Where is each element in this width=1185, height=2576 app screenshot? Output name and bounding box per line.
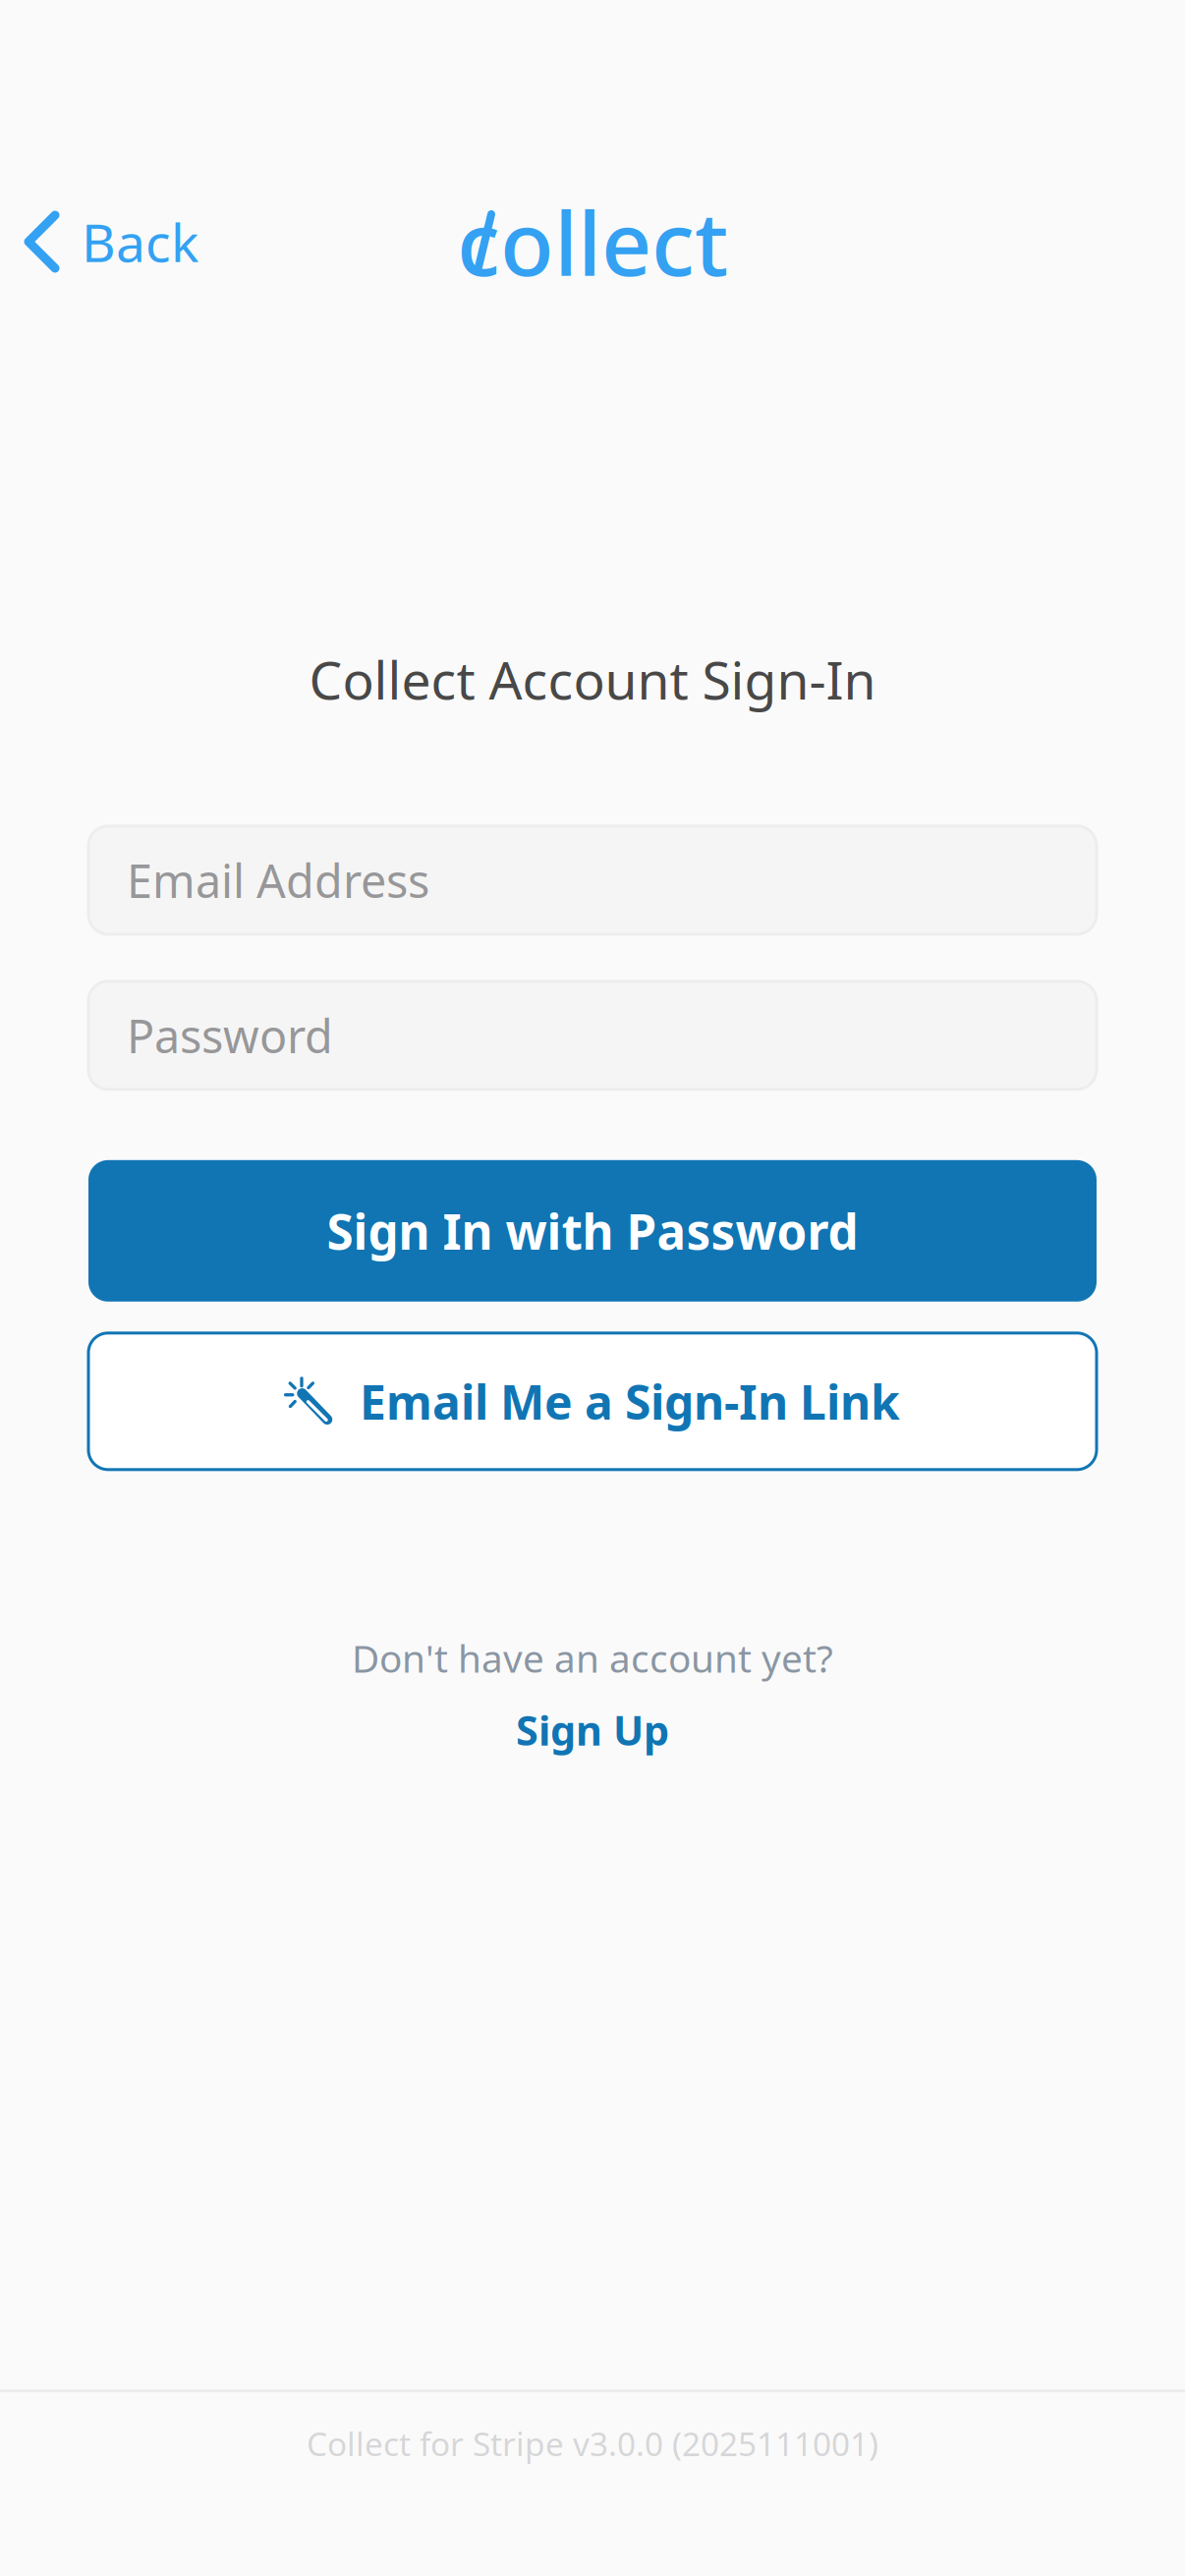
staticText: collect	[457, 183, 728, 300]
button[interactable]: Email Me a Sign-In Link	[88, 1333, 1097, 1470]
button[interactable]: Back	[1, 193, 220, 290]
staticText: Don't have an account yet?	[352, 1633, 833, 1683]
staticText: Collect Account Sign-In	[309, 644, 876, 714]
staticText: Sign In with Password	[327, 1199, 858, 1263]
staticText: Email Address	[127, 850, 429, 911]
button[interactable]: Sign In with Password	[88, 1160, 1097, 1302]
staticText: Email Me a Sign-In Link	[360, 1370, 900, 1433]
staticText: Collect for Stripe v3.0.0 (2025111001)	[307, 2422, 878, 2465]
staticText: Password	[127, 1005, 333, 1066]
staticText: Back	[82, 207, 198, 276]
staticText: Sign Up	[516, 1703, 669, 1757]
button[interactable]: Password	[88, 981, 1097, 1089]
button[interactable]: Email Address	[88, 826, 1097, 934]
button[interactable]: Sign Up	[486, 1697, 699, 1763]
